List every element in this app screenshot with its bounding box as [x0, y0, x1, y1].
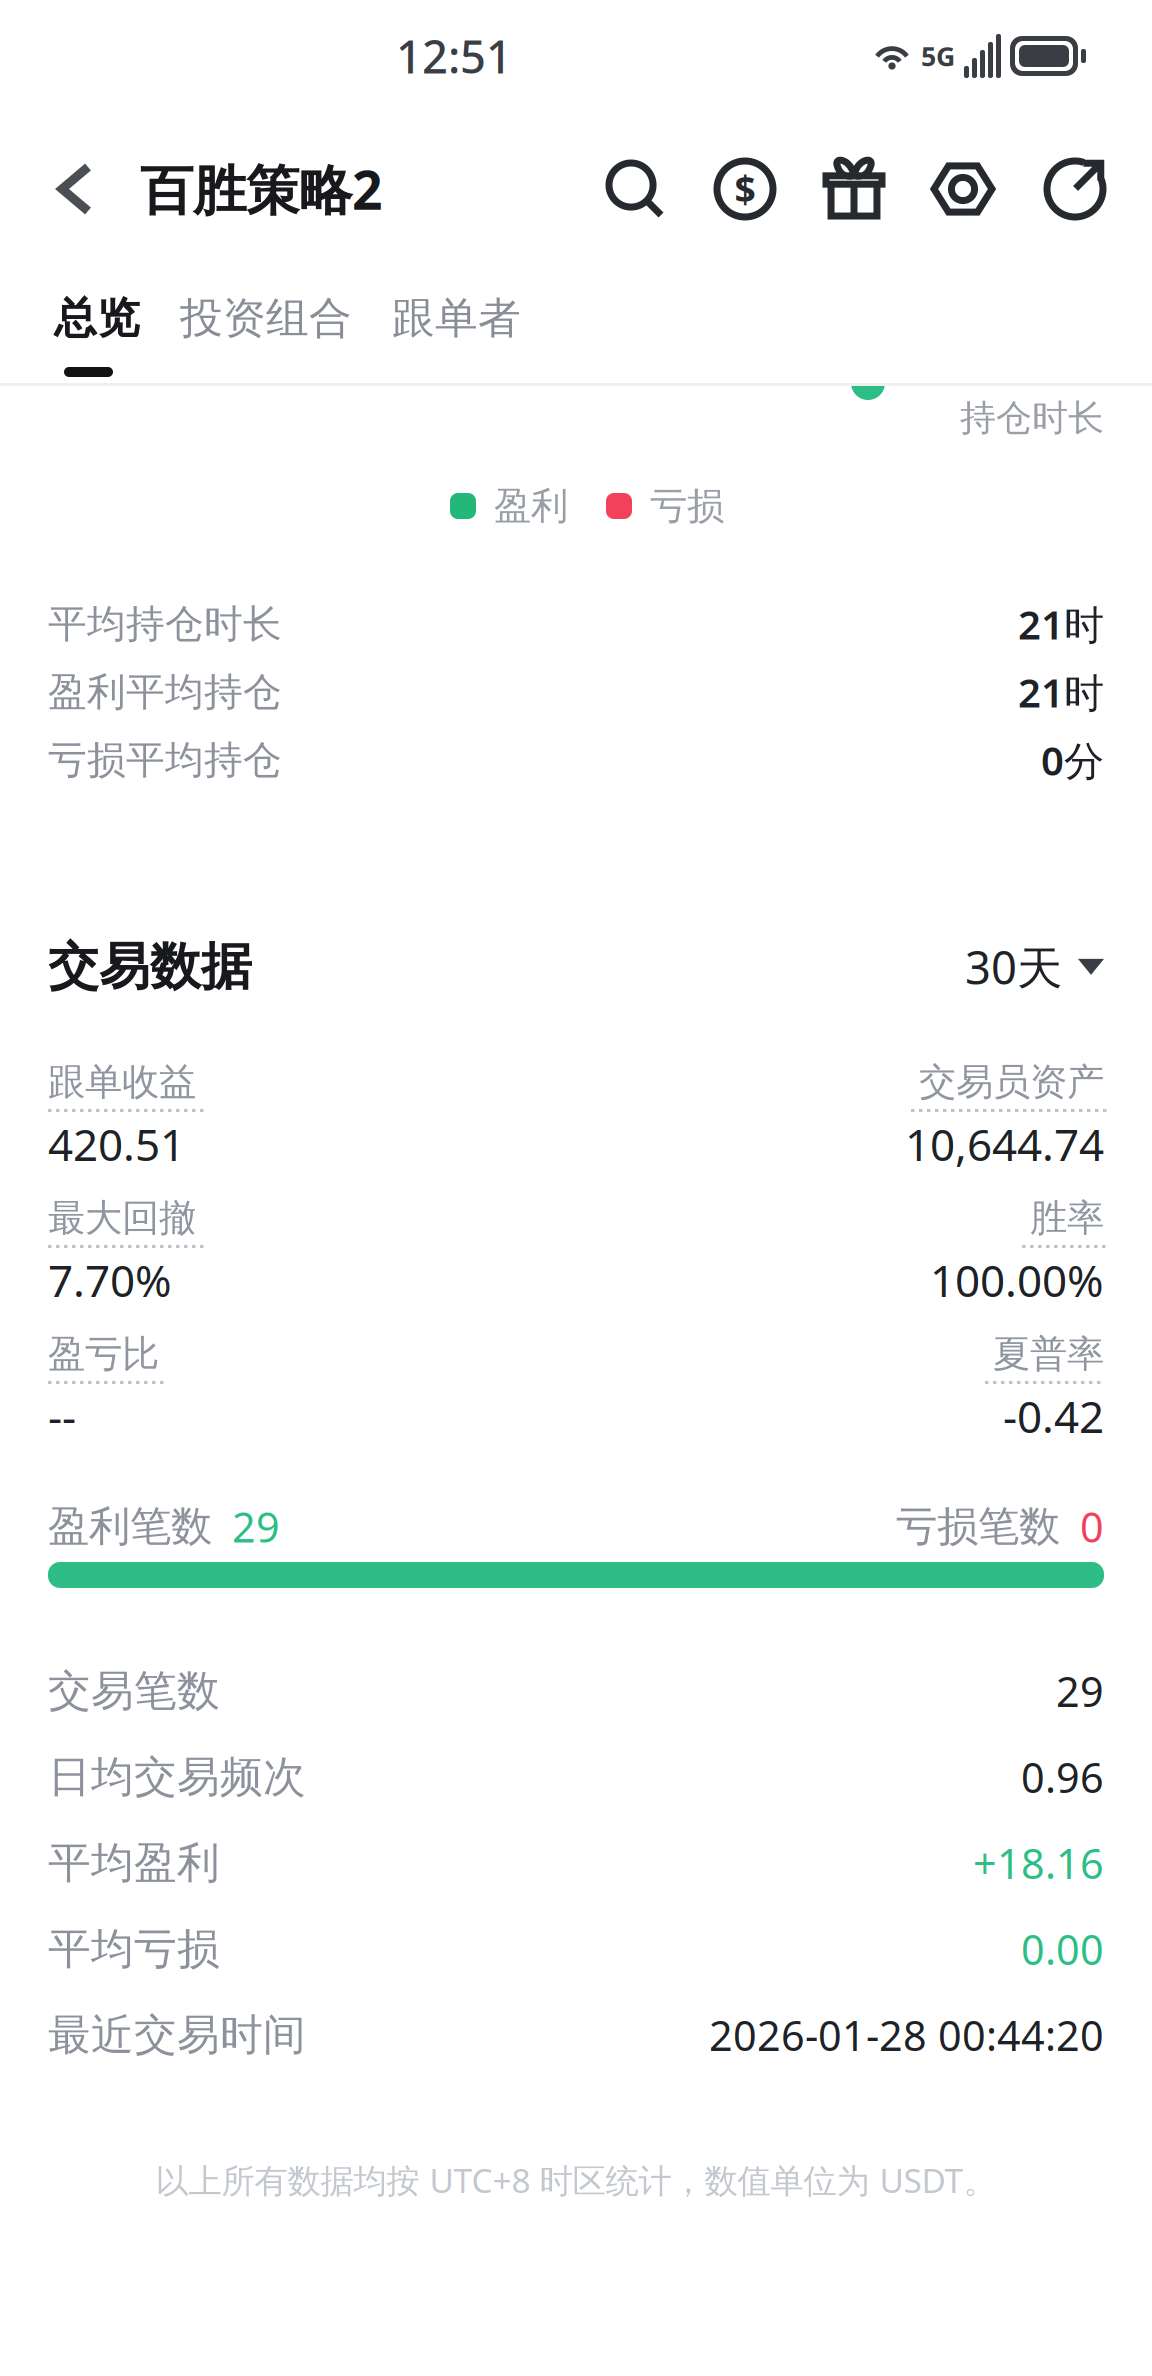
staticText: 29 [232, 1499, 280, 1554]
staticText: 日均交易频次 [48, 1751, 306, 1803]
staticText: 12:51 [396, 26, 512, 86]
staticText: 21时 [1018, 665, 1104, 718]
staticText: 盈利笔数 [48, 1501, 212, 1552]
staticText: 0.96 [1021, 1750, 1104, 1804]
staticText: 0 [1080, 1499, 1104, 1554]
staticText: 420.51 [48, 1115, 185, 1173]
staticText: 最大回撤 [48, 1195, 196, 1241]
staticText: 百胜策略2 [140, 154, 383, 224]
staticText: 交易员资产 [919, 1059, 1104, 1105]
staticText: +18.16 [973, 1836, 1104, 1890]
staticText: 胜率 [1030, 1195, 1104, 1241]
button[interactable]: 投资组合 [180, 292, 352, 344]
button[interactable]: Settings [932, 160, 994, 218]
staticText: -- [48, 1387, 76, 1445]
button[interactable]: 30天 [965, 937, 1104, 997]
staticText: 跟单者 [392, 292, 521, 344]
staticText: 跟单收益 [48, 1059, 196, 1105]
staticText: 以上所有数据均按 UTC+8 时区统计，数值单位为 USDT。 [155, 2158, 996, 2202]
staticText: 7.70% [48, 1251, 172, 1309]
button[interactable]: 总览 [54, 292, 140, 344]
staticText: 平均盈利 [48, 1837, 220, 1889]
button[interactable]: Share [1044, 158, 1106, 220]
staticText: 亏损笔数 [896, 1501, 1060, 1552]
staticText: 100.00% [930, 1251, 1104, 1309]
staticText: 亏损平均持仓 [48, 736, 282, 784]
staticText: 最近交易时间 [48, 2009, 306, 2061]
staticText: -0.42 [1003, 1387, 1104, 1445]
staticText: 夏普率 [993, 1331, 1104, 1377]
staticText: 亏损 [650, 483, 724, 529]
staticText: 盈利平均持仓 [48, 668, 282, 716]
staticText: 交易笔数 [48, 1665, 220, 1717]
staticText: 0.00 [1021, 1922, 1104, 1976]
staticText: 盈亏比 [48, 1331, 159, 1377]
staticText: 交易数据 [48, 936, 252, 998]
staticText: 平均持仓时长 [48, 600, 282, 648]
button[interactable]: Back [0, 167, 108, 211]
staticText: 30天 [965, 937, 1062, 997]
staticText: 10,644.74 [905, 1115, 1104, 1173]
staticText: 持仓时长 [960, 396, 1104, 440]
staticText: 2026-01-28 00:44:20 [709, 2008, 1104, 2062]
staticText: 盈利 [494, 483, 568, 529]
button[interactable]: 跟单者 [392, 292, 521, 344]
staticText: 0分 [1041, 733, 1104, 786]
staticText: 5G [921, 38, 955, 74]
staticText: 29 [1056, 1664, 1104, 1718]
button[interactable]: Fees [714, 158, 776, 220]
button[interactable]: Search [606, 160, 664, 218]
staticText: 平均亏损 [48, 1923, 220, 1975]
staticText: $ [734, 164, 755, 214]
staticText: 总览 [54, 292, 140, 344]
button[interactable]: Rewards [826, 159, 882, 219]
staticText: 21时 [1018, 597, 1104, 650]
staticText: 投资组合 [180, 292, 352, 344]
